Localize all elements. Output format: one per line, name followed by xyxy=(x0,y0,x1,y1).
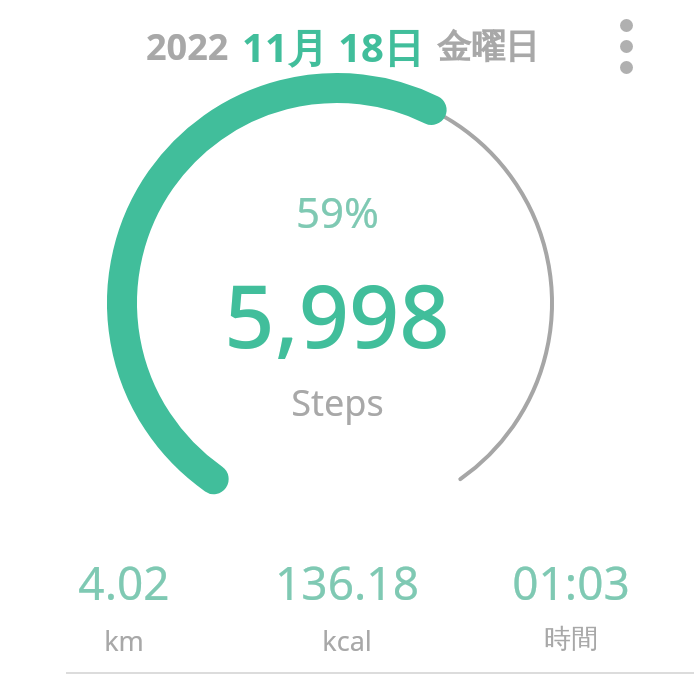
staticText: 59% xyxy=(296,183,379,240)
staticText: 2022 xyxy=(146,22,229,71)
staticText: 136.18 xyxy=(275,551,419,614)
staticText: 11月 18日 xyxy=(242,19,424,74)
staticText: Steps xyxy=(291,378,384,427)
staticText: 時間 xyxy=(544,622,598,651)
staticText: 5,998 xyxy=(224,254,450,374)
staticText: 金曜日 xyxy=(437,25,539,68)
button[interactable]: 01:03 xyxy=(471,551,671,651)
staticText: km xyxy=(104,622,144,651)
button[interactable]: 4.02 xyxy=(24,551,224,651)
button[interactable]: Step progress ring xyxy=(107,73,567,533)
staticText: 4.02 xyxy=(78,551,170,614)
button[interactable]: 136.18 xyxy=(247,551,447,651)
button[interactable]: More options xyxy=(604,10,648,82)
staticText: kcal xyxy=(322,622,372,651)
staticText: 01:03 xyxy=(512,551,630,614)
